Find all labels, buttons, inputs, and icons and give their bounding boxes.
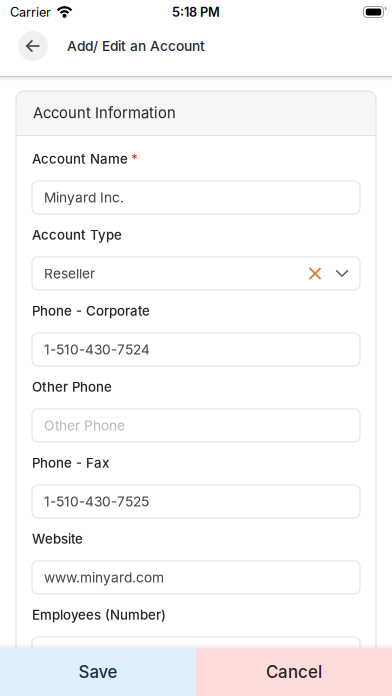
staticText: Account Information [33, 104, 176, 122]
staticText: Carrier [10, 4, 51, 20]
staticText: Cancel [266, 662, 322, 682]
button[interactable]: Clear selection [302, 257, 328, 290]
staticText: * [131, 151, 138, 167]
button[interactable]: Account Type, Reseller [32, 257, 360, 290]
staticText: 10 [44, 645, 59, 662]
button[interactable]: Save [0, 648, 196, 696]
staticText: Website [32, 531, 83, 547]
staticText: Add/ Edit an Account [67, 38, 205, 54]
button[interactable]: Cancel [196, 648, 392, 696]
staticText: 1-510-430-7524 [44, 341, 150, 358]
staticText: 5:18 PM [172, 4, 220, 20]
staticText: Account Type [32, 227, 122, 243]
staticText: 1-510-430-7525 [44, 493, 149, 510]
staticText: Phone - Corporate [32, 303, 150, 319]
staticText: www.minyard.com [44, 569, 164, 586]
button[interactable]: Back [18, 31, 48, 61]
staticText: Account Name [32, 151, 128, 167]
staticText: Other Phone [32, 379, 112, 395]
staticText: Employees (Number) [32, 607, 166, 623]
staticText: Minyard Inc. [44, 189, 124, 206]
staticText: Phone - Fax [32, 455, 109, 471]
staticText: Save [78, 662, 117, 682]
staticText: Reseller [44, 265, 95, 282]
staticText: Other Phone [44, 417, 125, 434]
